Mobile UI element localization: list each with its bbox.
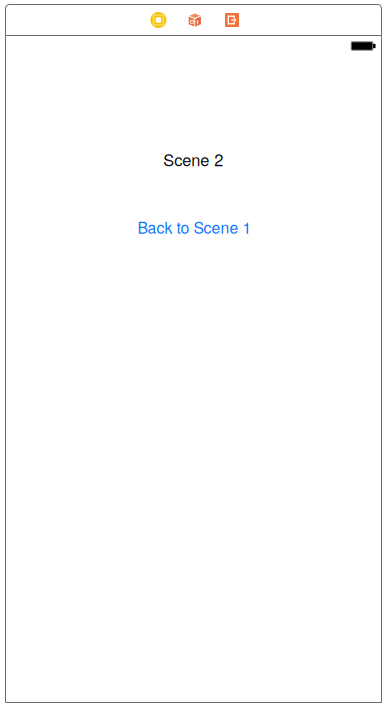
staticText: Scene 2 — [163, 147, 223, 171]
button[interactable]: Build — [180, 6, 210, 34]
staticText: Back to Scene 1 — [137, 216, 251, 238]
button[interactable]: Export — [217, 6, 247, 34]
button[interactable]: Back to Scene 1 — [119, 210, 269, 244]
button[interactable]: Stop — [143, 6, 173, 34]
